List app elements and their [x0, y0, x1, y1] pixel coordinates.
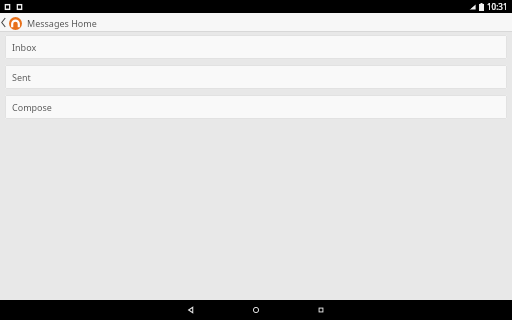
- button[interactable]: Back: [183, 302, 199, 318]
- button[interactable]: App icon: [7, 15, 23, 31]
- button[interactable]: Inbox: [5, 35, 507, 59]
- staticText: Messages Home: [27, 17, 97, 29]
- button[interactable]: Sent: [5, 65, 507, 89]
- button[interactable]: Back: [0, 13, 7, 32]
- staticText: Compose: [12, 101, 52, 113]
- staticText: Inbox: [12, 41, 37, 53]
- button[interactable]: Compose: [5, 95, 507, 119]
- button[interactable]: Recents: [313, 302, 329, 318]
- staticText: Sent: [12, 71, 31, 83]
- staticText: 10:31: [487, 1, 508, 12]
- button[interactable]: Home: [248, 302, 264, 318]
